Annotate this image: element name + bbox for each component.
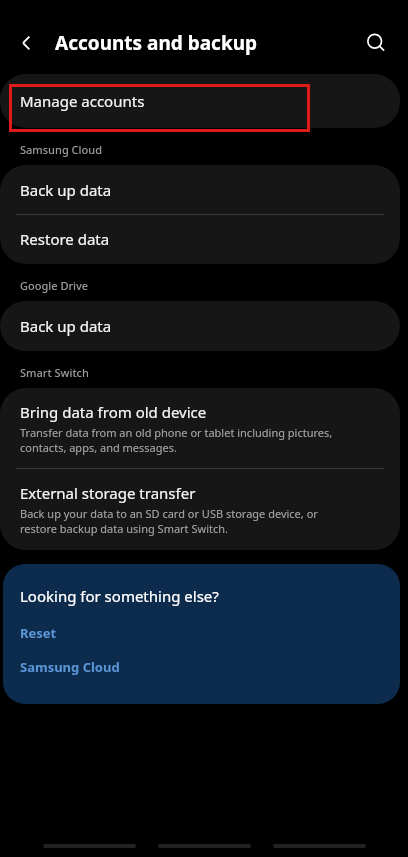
button[interactable]: Back — [5, 21, 49, 65]
staticText: Smart Switch — [20, 365, 89, 380]
staticText: Reset — [20, 624, 57, 642]
staticText: Accounts and backup — [55, 30, 258, 56]
staticText: Back up data — [20, 316, 112, 336]
button[interactable]: Bring data from old device — [0, 388, 400, 468]
button[interactable]: Manage accounts — [0, 74, 400, 128]
staticText: Looking for something else? — [20, 586, 219, 606]
button[interactable]: Back up data — [0, 165, 400, 214]
button[interactable]: External storage transfer — [0, 469, 400, 550]
staticText: External storage transfer — [20, 483, 196, 503]
staticText: Restore data — [20, 229, 110, 249]
staticText: Google Drive — [20, 278, 89, 293]
button[interactable]: Reset — [20, 624, 57, 642]
staticText: Samsung Cloud — [20, 658, 120, 676]
staticText: Samsung Cloud — [20, 142, 102, 157]
button[interactable]: Back up data — [0, 301, 400, 351]
button[interactable]: Search — [354, 21, 398, 65]
staticText: Manage accounts — [20, 91, 145, 111]
staticText: Back up data — [20, 180, 112, 200]
staticText: Transfer data from an old phone or table… — [20, 425, 333, 455]
button[interactable]: Samsung Cloud — [20, 658, 120, 676]
staticText: Bring data from old device — [20, 402, 207, 422]
staticText: Back up your data to an SD card or USB s… — [20, 506, 318, 536]
button[interactable]: Restore data — [0, 215, 400, 264]
